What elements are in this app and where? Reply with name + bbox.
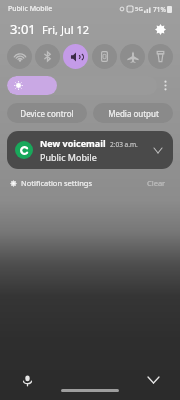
staticText: 2:03 a.m. <box>110 140 138 149</box>
button[interactable]: Brightness options <box>157 76 173 95</box>
staticText: Notification settings <box>21 178 92 188</box>
staticText: 5G <box>135 5 143 13</box>
staticText: Device control <box>20 108 74 119</box>
staticText: Clear <box>147 178 166 188</box>
button[interactable]: Sound <box>63 44 88 69</box>
staticText: Public Mobile <box>8 4 53 14</box>
button[interactable]: Flashlight <box>148 44 173 69</box>
button[interactable]: Airplane mode <box>120 44 145 69</box>
button[interactable]: Clear <box>143 176 170 190</box>
staticText: Public Mobile <box>40 151 97 163</box>
button[interactable]: Wi-Fi <box>7 44 32 69</box>
button[interactable]: New voicemail <box>7 131 173 169</box>
button[interactable]: Device control <box>7 103 87 123</box>
staticText: Media output <box>108 108 159 119</box>
button[interactable]: Settings <box>150 19 170 39</box>
button[interactable]: Voice assistant <box>18 371 36 389</box>
button[interactable]: Auto rotate <box>92 44 117 69</box>
staticText: New voicemail <box>40 137 106 149</box>
button[interactable]: Media output <box>93 103 173 123</box>
staticText: Fri, Jul 12 <box>42 22 89 37</box>
button[interactable]: Collapse <box>144 371 162 389</box>
button[interactable]: Notification settings <box>10 176 92 190</box>
button[interactable]: Expand notification <box>151 143 165 157</box>
button[interactable]: Bluetooth <box>35 44 60 69</box>
staticText: 3:01 <box>10 20 36 38</box>
button[interactable]: Brightness <box>7 76 157 95</box>
staticText: 71% <box>153 5 166 14</box>
